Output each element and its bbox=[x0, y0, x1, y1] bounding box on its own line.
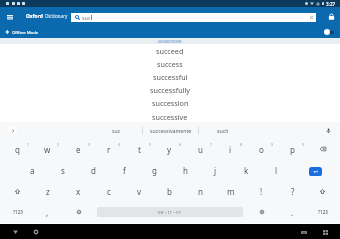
button[interactable]: successful bbox=[0, 70, 340, 83]
button[interactable]: Change keyboard bbox=[299, 227, 309, 237]
staticText: 1 bbox=[27, 142, 29, 147]
button[interactable]: Settings bbox=[246, 202, 277, 222]
button[interactable]: suc bbox=[71, 13, 316, 22]
staticText: 6 bbox=[179, 142, 181, 147]
button[interactable]: success bbox=[0, 57, 340, 70]
staticText: success bbox=[157, 59, 183, 69]
button[interactable]: y bbox=[154, 139, 185, 159]
staticText: j bbox=[214, 165, 217, 176]
staticText: 5 bbox=[149, 142, 151, 147]
button[interactable]: . bbox=[277, 202, 308, 222]
staticText: z bbox=[46, 186, 50, 197]
staticText: ? bbox=[291, 186, 295, 197]
button[interactable]: l bbox=[261, 160, 292, 180]
button[interactable]: u bbox=[185, 139, 216, 159]
button[interactable]: o bbox=[246, 139, 277, 159]
staticText: Dictionary bbox=[45, 13, 68, 20]
staticText: l bbox=[275, 165, 278, 176]
button[interactable]: , bbox=[32, 202, 63, 222]
button[interactable]: ?123 bbox=[307, 202, 338, 222]
staticText: o bbox=[259, 144, 264, 155]
button[interactable]: q bbox=[2, 139, 33, 159]
button[interactable]: p bbox=[277, 139, 308, 159]
button[interactable]: w bbox=[32, 139, 63, 159]
button[interactable]: v bbox=[124, 181, 155, 201]
button[interactable]: Shift bbox=[2, 181, 33, 201]
button[interactable]: More suggestions bbox=[8, 126, 17, 135]
button[interactable]: successivamente bbox=[143, 122, 198, 139]
staticText: q bbox=[15, 144, 20, 155]
staticText: succeed bbox=[156, 46, 184, 56]
staticText: y bbox=[167, 144, 172, 155]
staticText: 8 bbox=[240, 142, 242, 147]
button[interactable]: Recent apps bbox=[320, 227, 330, 237]
button[interactable]: s bbox=[47, 160, 78, 180]
button[interactable]: ?123 bbox=[2, 202, 33, 222]
button[interactable]: a bbox=[17, 160, 48, 180]
button[interactable]: Voice input bbox=[323, 125, 334, 136]
button[interactable]: x bbox=[63, 181, 94, 201]
staticText: Oxford bbox=[26, 13, 43, 20]
staticText: m bbox=[227, 186, 235, 197]
button[interactable]: h bbox=[170, 160, 201, 180]
staticText: . bbox=[291, 207, 294, 218]
staticText: i bbox=[229, 144, 232, 155]
staticText: successive bbox=[152, 112, 188, 122]
button[interactable]: Lock bbox=[324, 9, 339, 24]
staticText: 9 bbox=[271, 142, 273, 147]
staticText: 4 bbox=[118, 142, 120, 147]
staticText: EN • IT • PT bbox=[158, 210, 182, 215]
button[interactable]: r bbox=[93, 139, 124, 159]
staticText: 7 bbox=[210, 142, 212, 147]
staticText: v bbox=[137, 186, 142, 197]
button[interactable]: successfully bbox=[0, 83, 340, 96]
button[interactable]: Clear search bbox=[307, 13, 316, 22]
staticText: k bbox=[244, 165, 249, 176]
button[interactable]: succeed bbox=[0, 44, 340, 57]
staticText: c bbox=[107, 186, 111, 197]
button[interactable]: b bbox=[154, 181, 185, 201]
button[interactable]: Caps lock bbox=[307, 181, 338, 201]
staticText: a bbox=[30, 165, 35, 176]
button[interactable]: d bbox=[78, 160, 109, 180]
button[interactable]: c bbox=[93, 181, 124, 201]
button[interactable]: Backspace bbox=[307, 139, 338, 159]
button[interactable]: Open navigation menu bbox=[3, 10, 17, 24]
button[interactable]: z bbox=[32, 181, 63, 201]
button[interactable]: t bbox=[124, 139, 155, 159]
staticText: 0 bbox=[302, 142, 304, 147]
staticText: h bbox=[183, 165, 188, 176]
button[interactable]: suc bbox=[90, 122, 142, 139]
button[interactable]: i bbox=[215, 139, 246, 159]
staticText: s bbox=[61, 165, 65, 176]
staticText: 2 bbox=[57, 142, 59, 147]
staticText: succession bbox=[152, 98, 189, 108]
staticText: f bbox=[123, 165, 126, 176]
button[interactable]: Emoji bbox=[63, 202, 94, 222]
button[interactable]: such bbox=[199, 122, 247, 139]
button[interactable]: k bbox=[231, 160, 262, 180]
staticText: t bbox=[138, 144, 141, 155]
button[interactable]: EN • IT • PT bbox=[97, 207, 243, 217]
button[interactable]: j bbox=[200, 160, 231, 180]
button[interactable]: Enter bbox=[309, 167, 322, 176]
button[interactable]: Home bbox=[31, 227, 41, 237]
button[interactable]: succession bbox=[0, 96, 340, 109]
button[interactable]: successive bbox=[0, 110, 340, 123]
button[interactable]: ? bbox=[277, 181, 308, 201]
button[interactable]: Back bbox=[10, 227, 20, 237]
button[interactable]: Offline Mode toggle bbox=[324, 28, 335, 36]
staticText: successivamente bbox=[150, 127, 192, 134]
button[interactable]: g bbox=[139, 160, 170, 180]
staticText: r bbox=[107, 144, 111, 155]
button[interactable]: f bbox=[109, 160, 140, 180]
staticText: , bbox=[46, 207, 49, 218]
button[interactable]: m bbox=[215, 181, 246, 201]
staticText: 3:27 bbox=[326, 1, 336, 7]
button[interactable]: ! bbox=[246, 181, 277, 201]
button[interactable]: n bbox=[185, 181, 216, 201]
staticText: successfully bbox=[150, 85, 191, 95]
button[interactable]: e bbox=[63, 139, 94, 159]
staticText: ?123 bbox=[318, 209, 328, 215]
staticText: d bbox=[91, 165, 96, 176]
